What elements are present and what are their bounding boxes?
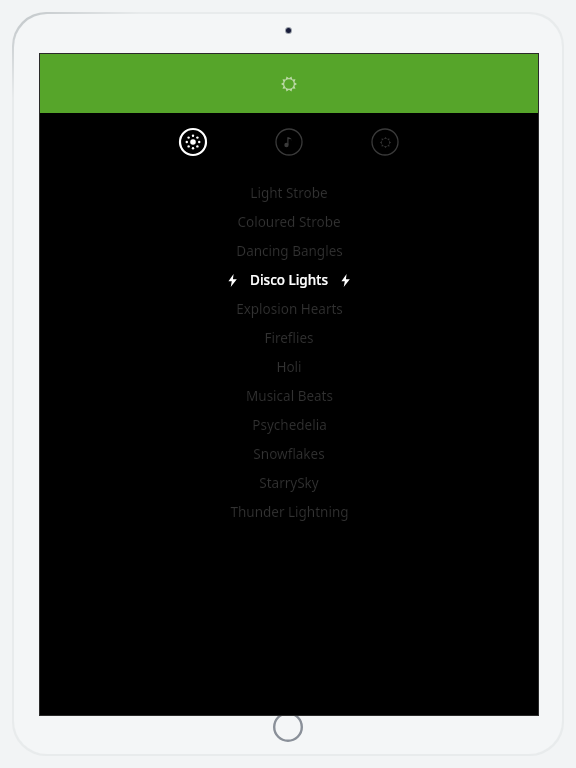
staticText: Holi [276,358,302,376]
button[interactable]: Thunder Lightning [40,497,538,526]
button[interactable]: Disco Lights [40,265,538,294]
staticText: Explosion Hearts [236,300,343,318]
staticText: Psychedelia [252,416,327,434]
button[interactable]: Light effects [179,128,207,156]
button[interactable]: Settings [371,128,399,156]
button[interactable]: Musical Beats [40,381,538,410]
button[interactable]: Fireflies [40,323,538,352]
button[interactable]: Coloured Strobe [40,207,538,236]
staticText: Coloured Strobe [237,213,341,231]
staticText: Thunder Lightning [230,503,349,521]
staticText: Disco Lights [250,271,328,289]
button[interactable]: Light Strobe [40,178,538,207]
staticText: Snowflakes [253,445,325,463]
staticText: StarrySky [259,474,319,492]
staticText: Dancing Bangles [236,242,343,260]
button[interactable]: Music [275,128,303,156]
button[interactable]: Snowflakes [40,439,538,468]
staticText: Musical Beats [246,387,333,405]
button[interactable]: StarrySky [40,468,538,497]
button[interactable]: Settings [40,54,538,113]
button[interactable]: Dancing Bangles [40,236,538,265]
button[interactable]: Home [273,712,303,742]
staticText: Light Strobe [250,184,328,202]
staticText: Fireflies [264,329,314,347]
button[interactable]: Psychedelia [40,410,538,439]
button[interactable]: Explosion Hearts [40,294,538,323]
